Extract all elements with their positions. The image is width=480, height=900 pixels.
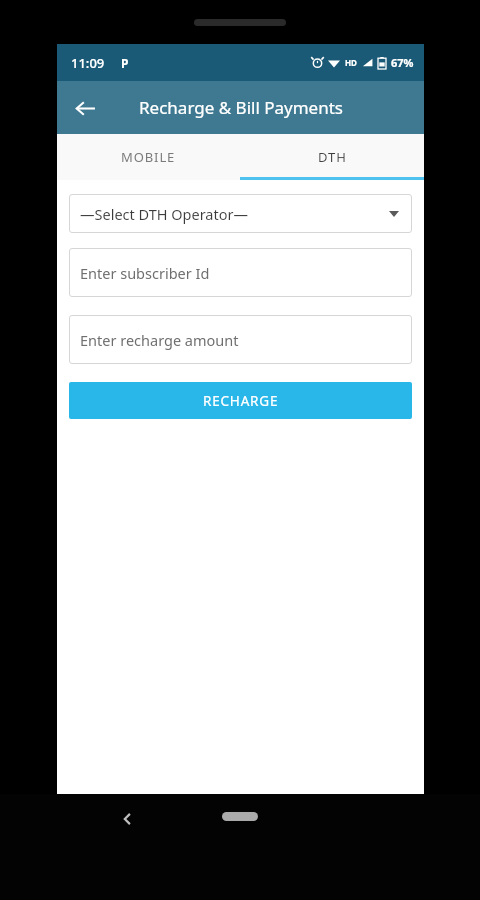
staticText: DTH bbox=[318, 148, 347, 166]
button[interactable]: Enter recharge amount bbox=[69, 315, 412, 364]
button[interactable]: MOBILE bbox=[57, 134, 240, 180]
staticText: 11:09 bbox=[71, 54, 105, 72]
button[interactable]: —Select DTH Operator— bbox=[69, 194, 412, 233]
staticText: Recharge & Bill Payments bbox=[139, 96, 343, 119]
staticText: HD bbox=[345, 57, 357, 68]
staticText: Enter recharge amount bbox=[80, 330, 239, 350]
staticText: —Select DTH Operator— bbox=[80, 204, 248, 224]
button[interactable]: DTH bbox=[240, 134, 424, 180]
button[interactable]: Enter subscriber Id bbox=[69, 248, 412, 297]
button[interactable]: Back bbox=[108, 799, 148, 839]
button[interactable]: Home bbox=[222, 812, 258, 821]
button[interactable]: RECHARGE bbox=[69, 382, 412, 419]
staticText: Enter subscriber Id bbox=[80, 263, 210, 283]
staticText: 67% bbox=[391, 55, 414, 70]
staticText: P bbox=[121, 55, 129, 71]
staticText: MOBILE bbox=[121, 148, 176, 166]
button[interactable]: Navigate up bbox=[63, 86, 107, 130]
staticText: RECHARGE bbox=[203, 392, 279, 410]
